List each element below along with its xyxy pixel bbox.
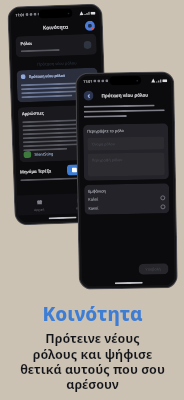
staticText: Πρόταση bbox=[79, 167, 96, 172]
staticText: Κακοί bbox=[88, 205, 99, 211]
staticText: Αρχική bbox=[34, 208, 44, 212]
staticText: 11:01 bbox=[15, 12, 25, 17]
button[interactable]: Profile bbox=[85, 21, 95, 31]
staticText: 11:01 bbox=[83, 79, 92, 84]
button[interactable]: Υποβολή bbox=[138, 263, 169, 275]
staticText: Πρόταση νέου ρόλου bbox=[37, 60, 77, 67]
button[interactable]: Πρόταση νέου ρόλου bbox=[16, 68, 98, 102]
staticText: Εμφάνιση bbox=[88, 188, 106, 194]
staticText: Κοινότητα bbox=[42, 301, 143, 327]
staticText: Μηνύμα Τερέζα bbox=[20, 168, 52, 175]
staticText: Καλοί bbox=[88, 196, 98, 202]
button[interactable]: Κοινότητα bbox=[61, 192, 106, 214]
staticText: Περιγραφή ρόλου bbox=[92, 157, 123, 163]
button[interactable]: Αρρώστιες bbox=[18, 105, 101, 162]
staticText: Κοινότητα bbox=[76, 206, 91, 210]
staticText: Κοινότητα bbox=[43, 24, 69, 31]
button[interactable]: Back bbox=[83, 91, 94, 101]
button[interactable]: Ρόλοι bbox=[15, 34, 97, 57]
staticText: Πρόταση νέου ρόλου bbox=[29, 73, 66, 79]
button[interactable]: Περιγραφή ρόλου bbox=[87, 152, 165, 177]
staticText: Ρόλοι bbox=[20, 41, 33, 47]
button[interactable]: Πρόταση bbox=[67, 164, 101, 176]
button[interactable]: Αρχική bbox=[17, 194, 61, 215]
staticText: Υποβολή bbox=[145, 266, 162, 272]
staticText: Πρόταση νέου ρόλου bbox=[101, 92, 149, 98]
button[interactable]: Κακοί bbox=[88, 204, 165, 211]
button[interactable]: Όνομα ρόλου bbox=[87, 136, 164, 151]
staticText: Αρρώστιες bbox=[22, 110, 44, 117]
button[interactable]: Καλοί bbox=[88, 195, 165, 202]
staticText: SilentSting bbox=[34, 151, 54, 157]
staticText: Όνομα ρόλου bbox=[91, 141, 115, 147]
staticText: Πρότεινε νέους ρόλους και ψήφισε θετικά … bbox=[20, 330, 165, 392]
staticText: Περιγράψτε το ρόλο bbox=[87, 128, 124, 134]
